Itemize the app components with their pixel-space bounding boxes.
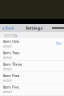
staticText: detail [3, 44, 12, 48]
button[interactable]: Item Three [0, 61, 64, 72]
staticText: detail [3, 55, 12, 60]
staticText: Item Two [3, 50, 19, 55]
button[interactable]: Item Five [0, 84, 64, 95]
staticText: Item Four [3, 73, 20, 78]
staticText: Settings [25, 25, 42, 31]
staticText: detail [3, 90, 12, 94]
staticText: detail [3, 67, 12, 71]
staticText: Item Three [3, 61, 22, 67]
staticText: detail [3, 78, 12, 83]
staticText: Item Five [3, 84, 19, 90]
staticText: Item One [3, 39, 19, 44]
staticText: ‹ [2, 23, 4, 33]
staticText: On [56, 41, 61, 46]
button[interactable]: Item Four [0, 72, 64, 83]
staticText: SECTION [4, 34, 17, 38]
button[interactable]: ‹ [0, 24, 16, 32]
staticText: Back [5, 25, 14, 31]
button[interactable]: Item One [0, 38, 64, 49]
button[interactable]: Item Two [0, 49, 64, 60]
